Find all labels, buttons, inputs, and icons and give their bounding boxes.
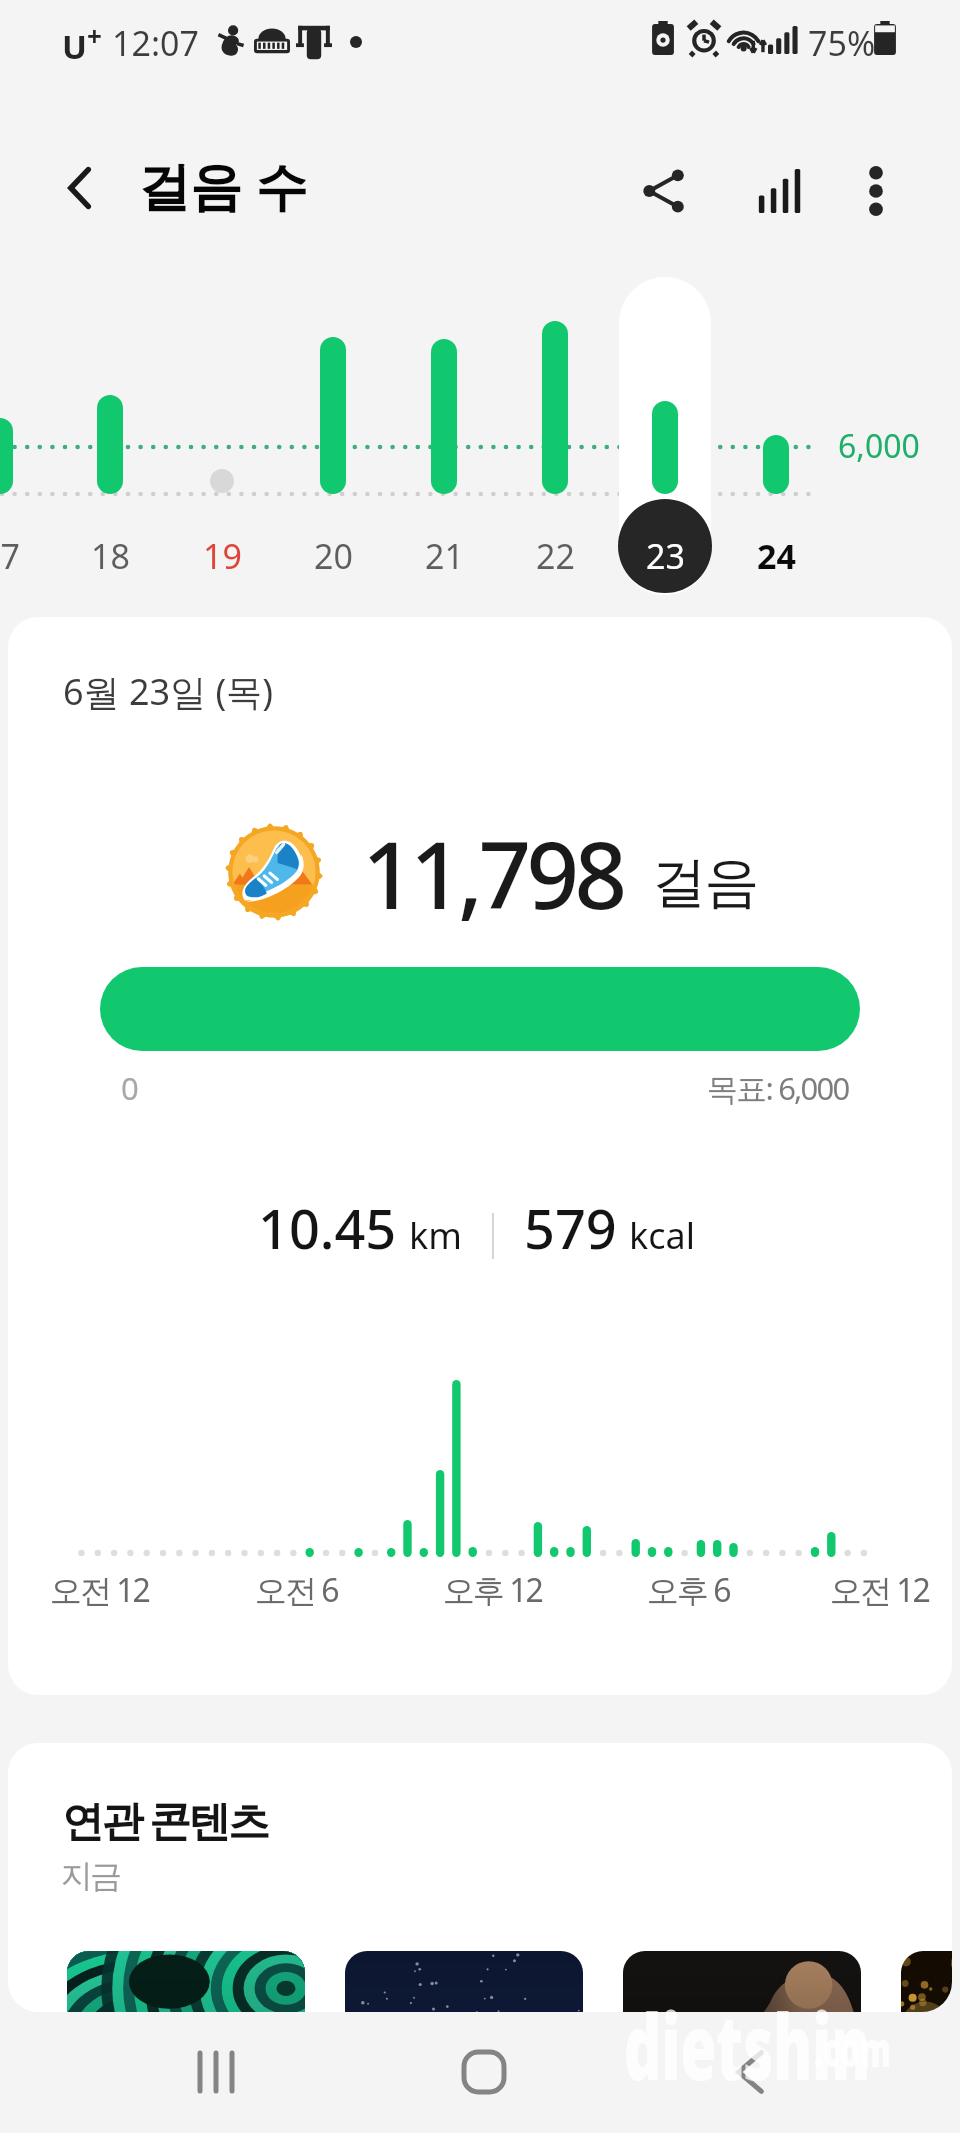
staticText: 17 [0, 533, 20, 579]
staticText: 20 [314, 533, 353, 579]
staticText: 21 [425, 533, 464, 579]
staticText: .com [814, 2016, 891, 2082]
button[interactable] [901, 1951, 952, 2012]
staticText: 24 [757, 533, 796, 579]
staticText: 오후 12 [443, 1568, 542, 1612]
button[interactable]: Recents [150, 2022, 282, 2122]
staticText: kcal [629, 1211, 695, 1260]
button[interactable]: 18 [64, 277, 156, 595]
staticText: 오후 6 [647, 1568, 730, 1612]
button[interactable]: Trends [736, 147, 824, 235]
staticText: 11,798 [362, 811, 623, 936]
button[interactable]: 21 [398, 277, 490, 595]
staticText: 10.45 [258, 1191, 397, 1265]
staticText: 6월 23일 (목) [63, 667, 274, 716]
staticText: 23 [646, 533, 685, 579]
button[interactable]: 19 [176, 277, 268, 595]
button[interactable] [623, 1951, 861, 2012]
button[interactable]: 20 [287, 277, 379, 595]
staticText: 걸음 수 [138, 149, 308, 220]
staticText: 12:07 [112, 20, 199, 66]
staticText: dietshin [624, 1984, 870, 2106]
button[interactable]: 17 [0, 277, 46, 595]
staticText: 19 [203, 533, 242, 579]
staticText: 오전 12 [50, 1568, 149, 1612]
button[interactable]: 24 [730, 277, 822, 595]
button[interactable]: 22 [509, 277, 601, 595]
button[interactable] [67, 1951, 305, 2012]
staticText: 22 [536, 533, 575, 579]
staticText: 0 [121, 1067, 139, 1109]
button[interactable]: Share [620, 147, 708, 235]
staticText: 걸음 [653, 848, 758, 917]
staticText: 오전 12 [830, 1568, 929, 1612]
staticText: 6,000 [838, 424, 920, 468]
staticText: km [409, 1211, 462, 1260]
staticText: 연관 콘텐츠 [62, 1791, 268, 1848]
button[interactable]: More options [832, 147, 920, 235]
staticText: 지금 [62, 1856, 121, 1896]
button[interactable]: Back [42, 150, 118, 226]
staticText: U [62, 24, 87, 69]
staticText: + [87, 18, 102, 53]
button[interactable] [100, 967, 860, 1051]
staticText: 18 [91, 533, 130, 579]
button[interactable]: 23 [619, 277, 711, 595]
staticText: 75% [808, 20, 876, 66]
button[interactable]: Home [418, 2022, 550, 2122]
staticText: 오전 6 [255, 1568, 338, 1612]
staticText: 579 [524, 1191, 617, 1265]
staticText: 목표: 6,000 [707, 1067, 849, 1109]
button[interactable] [345, 1951, 583, 2012]
button[interactable]: Back [684, 2022, 816, 2122]
